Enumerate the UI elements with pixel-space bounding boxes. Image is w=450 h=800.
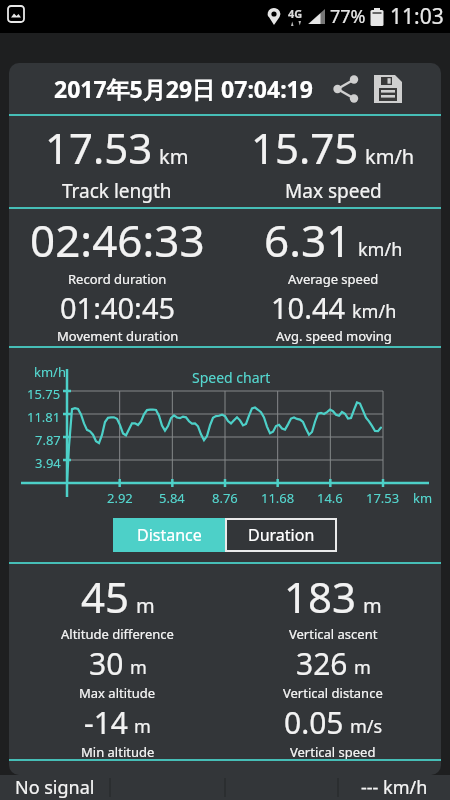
staticText: 30 <box>89 643 124 684</box>
staticText: 2017年5月29日 07:04:19 <box>54 73 313 104</box>
staticText: 15.75 <box>251 119 359 176</box>
staticText: m <box>136 592 155 619</box>
button[interactable] <box>332 75 360 103</box>
button[interactable]: Distance <box>113 518 225 552</box>
staticText: 02:46:33 <box>30 210 205 270</box>
staticText: 15.75 <box>27 385 61 403</box>
button[interactable] <box>373 74 403 104</box>
staticText: --- km/h <box>361 775 428 800</box>
staticText: Movement duration <box>57 327 179 345</box>
staticText: m <box>354 655 371 680</box>
staticText: Avg. speed moving <box>276 327 392 345</box>
staticText: 5.84 <box>159 489 185 507</box>
staticText: Speed chart <box>192 368 271 387</box>
staticText: Vertical ascent <box>289 625 378 643</box>
staticText: Distance <box>137 524 202 546</box>
staticText: 4G <box>288 6 303 21</box>
staticText: -14 <box>84 702 128 743</box>
button[interactable]: No signal <box>0 775 110 800</box>
staticText: Max altitude <box>79 684 156 702</box>
staticText: Altitude difference <box>61 625 174 643</box>
staticText: 14.6 <box>317 489 343 507</box>
staticText: 11.68 <box>261 489 295 507</box>
staticText: km <box>413 489 433 507</box>
staticText: 8.76 <box>212 489 238 507</box>
staticText: Track length <box>62 178 172 204</box>
staticText: m/s <box>350 714 383 739</box>
staticText: km/h <box>352 299 397 324</box>
staticText: m <box>363 592 382 619</box>
staticText: 11:03 <box>390 2 444 31</box>
staticText: 10.44 <box>271 288 346 327</box>
staticText: Record duration <box>68 270 167 288</box>
staticText: Duration <box>248 524 315 546</box>
staticText: 17.53 <box>45 119 153 176</box>
staticText: Vertical speed <box>290 743 376 761</box>
staticText: km/h <box>34 363 66 381</box>
staticText: Vertical distance <box>283 684 383 702</box>
staticText: m <box>130 655 147 680</box>
staticText: 17.53 <box>366 489 400 507</box>
staticText: 45 <box>81 568 130 625</box>
button[interactable]: Duration <box>225 518 337 552</box>
staticText: 7.87 <box>35 431 61 449</box>
staticText: m <box>134 714 151 739</box>
staticText: Max speed <box>285 178 382 204</box>
staticText: 2.92 <box>107 489 133 507</box>
staticText: 183 <box>284 568 357 625</box>
staticText: 6.31 <box>264 210 352 270</box>
staticText: 3.94 <box>35 454 61 472</box>
staticText: 0.05 <box>284 702 344 743</box>
staticText: km/h <box>358 237 403 262</box>
staticText: 01:40:45 <box>60 288 176 327</box>
staticText: Average speed <box>288 270 379 288</box>
staticText: km <box>159 143 189 170</box>
staticText: km/h <box>365 143 415 170</box>
staticText: Min altitude <box>81 743 155 761</box>
staticText: 326 <box>296 643 348 684</box>
staticText: 77% <box>330 4 366 29</box>
button[interactable]: --- km/h <box>338 775 450 800</box>
staticText: No signal <box>15 775 95 800</box>
staticText: 11.81 <box>27 408 61 426</box>
